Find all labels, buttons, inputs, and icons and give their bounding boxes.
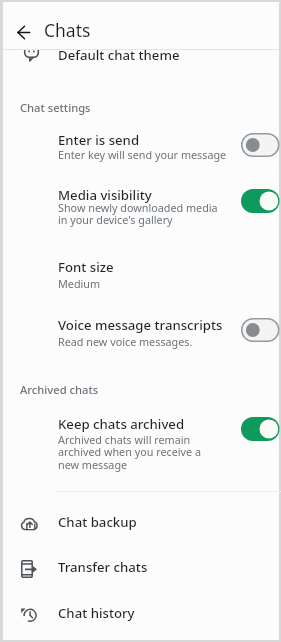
- staticText: Font size: [58, 258, 114, 276]
- staticText: Chat history: [58, 604, 135, 622]
- staticText: Default chat theme: [58, 50, 180, 64]
- staticText: Chat backup: [58, 513, 137, 531]
- button[interactable]: Enter is send: [3, 123, 279, 161]
- staticText: Chat settings: [20, 100, 91, 115]
- button[interactable]: Chat history: [3, 594, 279, 639]
- button[interactable]: Keep chats archived: [3, 407, 279, 471]
- staticText: Read new voice messages.: [58, 334, 193, 349]
- button[interactable]: Media visibility: [3, 178, 279, 227]
- staticText: Show newly downloaded media in your devi…: [58, 200, 218, 228]
- staticText: Transfer chats: [58, 558, 148, 576]
- button[interactable]: Font size: [3, 250, 279, 289]
- button[interactable]: Chat backup: [3, 503, 279, 548]
- staticText: Media visibility: [58, 186, 152, 204]
- button[interactable]: Transfer chats: [3, 548, 279, 593]
- staticText: Medium: [58, 276, 101, 291]
- staticText: Enter is send: [58, 131, 140, 149]
- staticText: Keep chats archived: [58, 415, 185, 433]
- staticText: Chats: [44, 18, 91, 42]
- staticText: Archived chats will remain archived when…: [58, 432, 202, 473]
- staticText: Archived chats: [20, 382, 99, 397]
- staticText: Enter key will send your message: [58, 147, 227, 162]
- staticText: Voice message transcripts: [58, 316, 223, 334]
- button[interactable]: Default chat theme: [3, 50, 279, 68]
- button[interactable]: Back: [9, 18, 37, 46]
- button[interactable]: Voice message transcripts: [3, 308, 279, 347]
